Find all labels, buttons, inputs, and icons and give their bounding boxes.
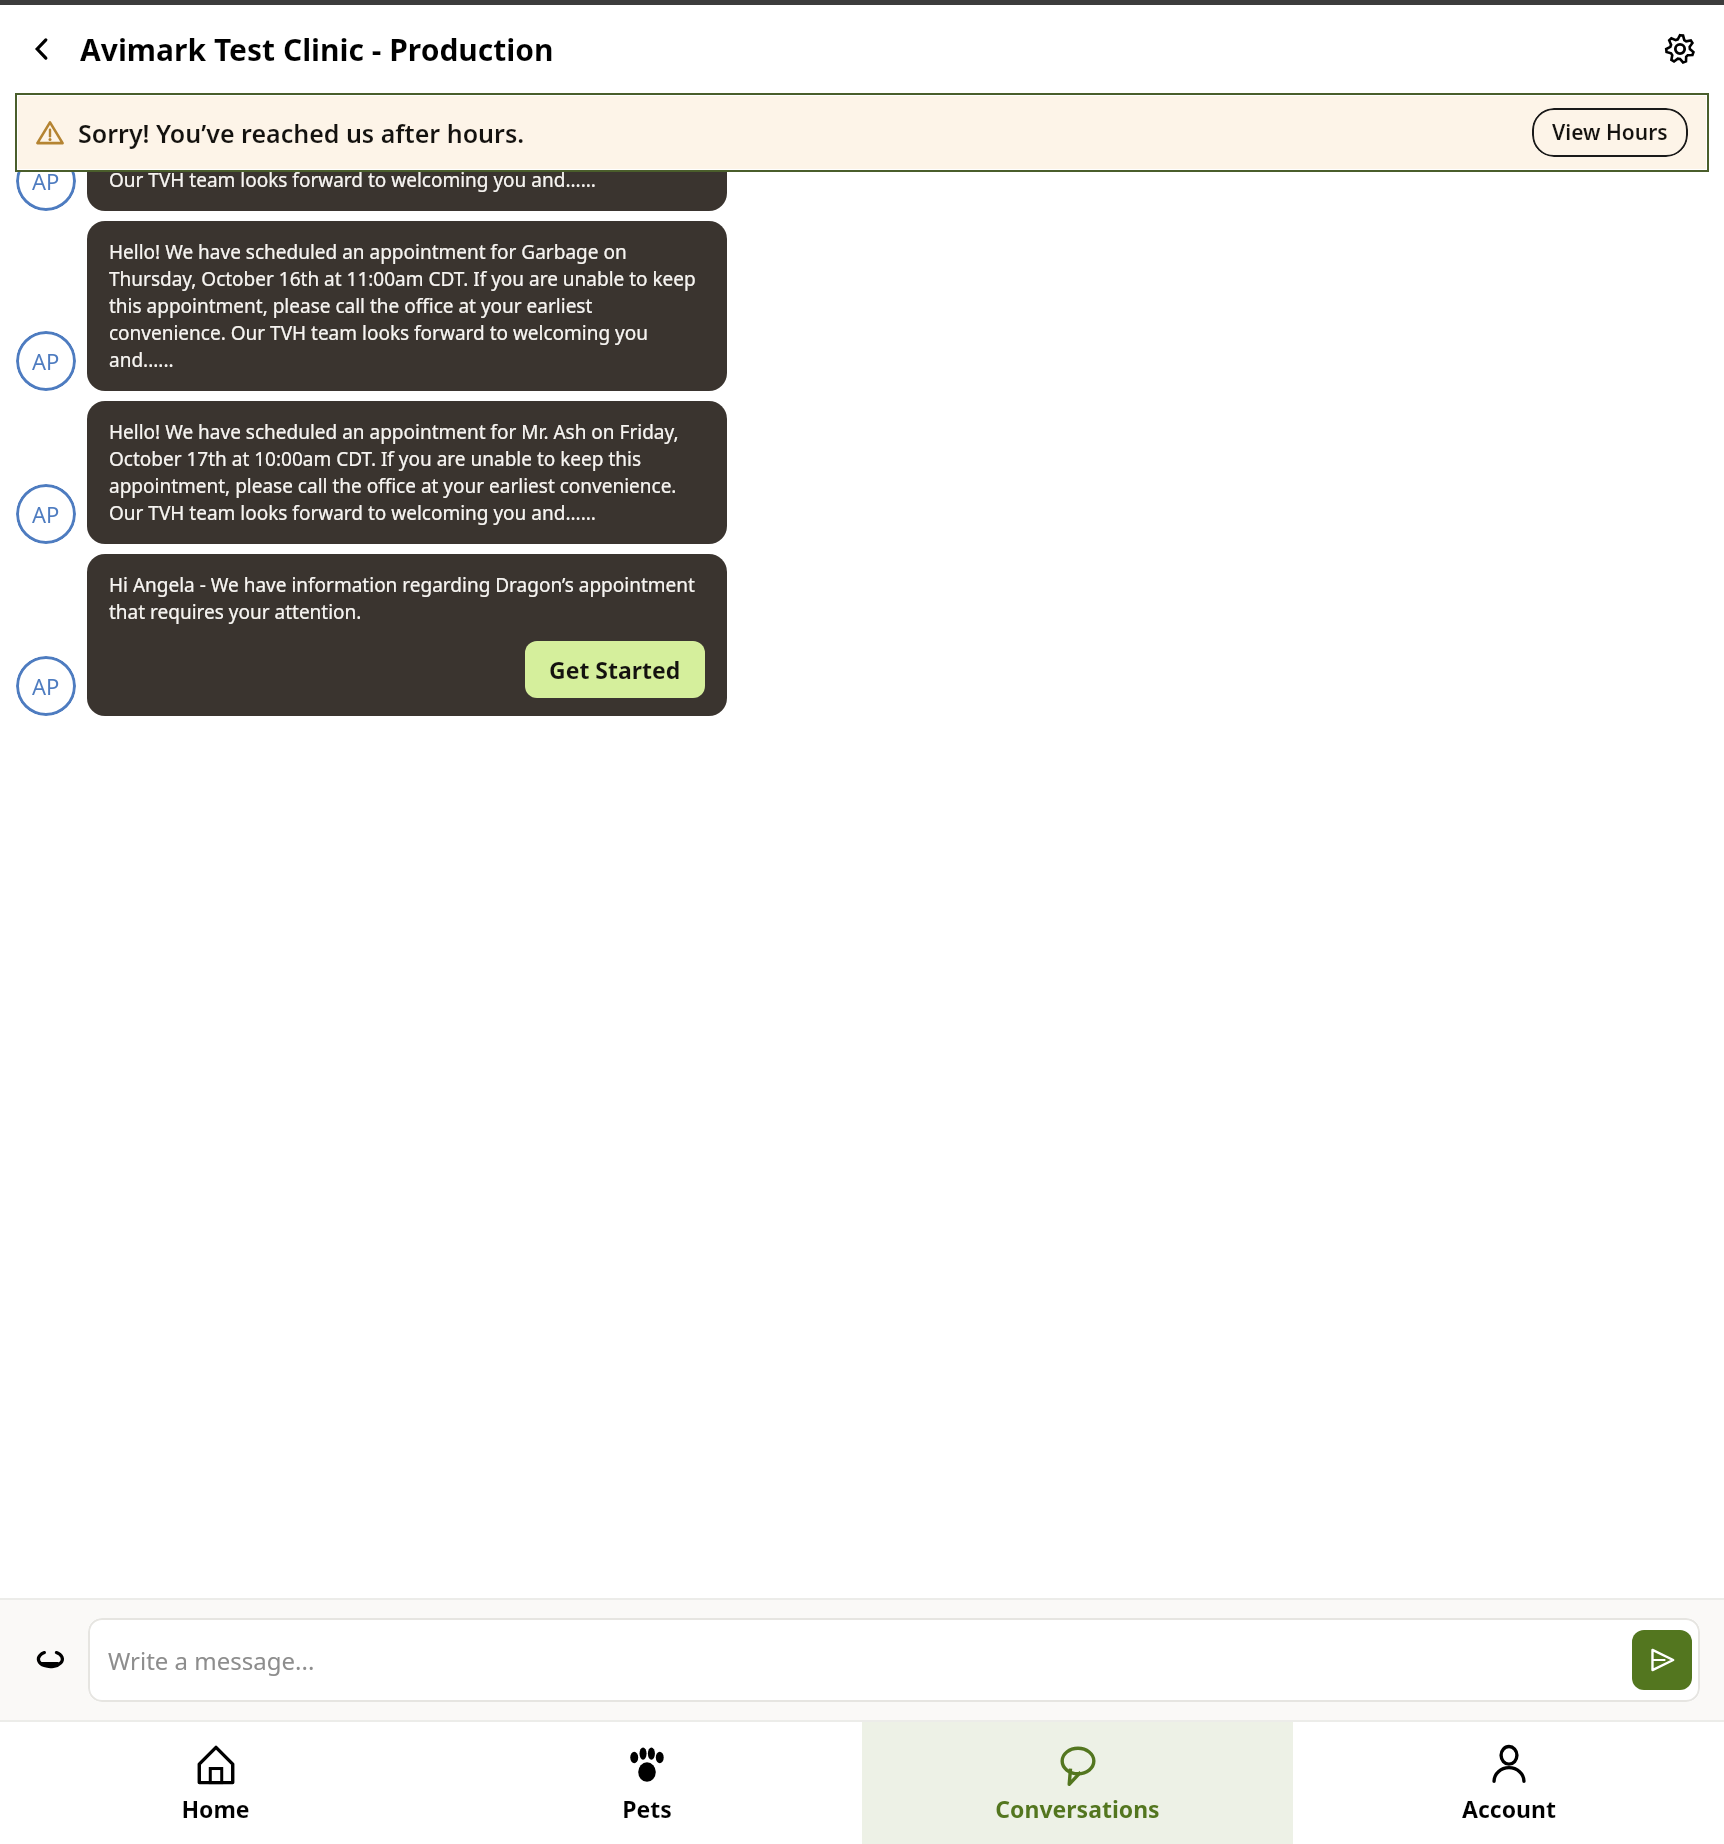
staticText: Hello! We have scheduled an appointment … (109, 419, 705, 526)
button[interactable]: Home (0, 1722, 431, 1844)
staticText: Avimark Test Clinic - Production (80, 29, 554, 70)
button[interactable]: Settings (1652, 21, 1708, 77)
button[interactable]: Conversations (862, 1722, 1293, 1844)
staticText: Pets (622, 1793, 672, 1824)
button[interactable]: Hi Angela - We have information regardin… (87, 554, 727, 716)
button[interactable]: Pets (431, 1722, 862, 1844)
staticText: View Hours (1552, 118, 1668, 147)
staticText: Write a message... (108, 1644, 315, 1677)
staticText: AP (32, 671, 60, 701)
staticText: AP (32, 346, 60, 376)
button[interactable]: Send (1632, 1630, 1692, 1690)
button[interactable]: Account (1293, 1722, 1724, 1844)
staticText: October 23rd at 4:00pm CDT. If you are u… (109, 113, 705, 193)
staticText: Hi Angela - We have information regardin… (109, 572, 705, 625)
staticText: Account (1462, 1793, 1556, 1824)
staticText: AP (32, 499, 60, 529)
staticText: AP (32, 166, 60, 196)
button[interactable]: Hello! We have scheduled an appointment … (87, 401, 727, 544)
button[interactable]: Hello! We have scheduled an appointment … (87, 221, 727, 391)
button[interactable]: October 23rd at 4:00pm CDT. If you are u… (87, 95, 727, 211)
staticText: Home (181, 1793, 250, 1824)
button[interactable]: Back (16, 23, 68, 75)
staticText: Sorry! You’ve reached us after hours. (78, 116, 525, 150)
staticText: Hello! We have scheduled an appointment … (109, 239, 705, 373)
staticText: Conversations (995, 1793, 1160, 1824)
staticText: Get Started (549, 654, 681, 685)
button[interactable]: Write a message... (88, 1618, 1700, 1702)
button[interactable]: Attach file (24, 1633, 78, 1687)
button[interactable]: Get Started (525, 641, 705, 698)
button[interactable]: View Hours (1532, 108, 1688, 157)
